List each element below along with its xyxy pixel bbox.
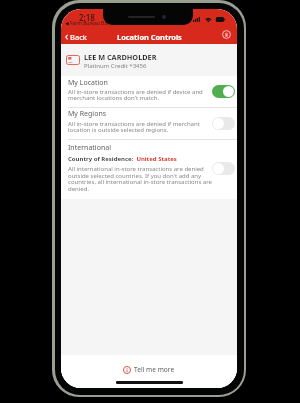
staticText: Back: [70, 32, 87, 42]
button[interactable]: [61, 44, 237, 76]
button[interactable]: ‹: [62, 28, 95, 43]
staticText: My Regions: [68, 109, 107, 119]
staticText: ‹: [65, 29, 69, 43]
staticText: Tell me more: [134, 365, 175, 374]
button[interactable]: Country of Residence: United States: [68, 155, 177, 163]
staticText: Location Controls: [117, 32, 182, 42]
staticText: ◀ Farm Bureau Ba...: [65, 20, 111, 27]
button[interactable]: Switch off: [212, 117, 235, 130]
staticText: LEE M CARDHOLDER: [84, 52, 157, 62]
staticText: merchant locations don't match.: [68, 94, 160, 102]
staticText: location is outside selected regions.: [68, 126, 169, 134]
button[interactable]: Switch off: [212, 162, 235, 175]
button[interactable]: Tell me more: [61, 365, 237, 374]
button[interactable]: [61, 76, 237, 107]
button[interactable]: Switch on: [212, 85, 235, 98]
staticText: My Location: [68, 78, 108, 88]
staticText: countries, all international in-store tr…: [68, 178, 212, 186]
staticText: 2:18: [79, 12, 95, 23]
staticText: All international in-store transactions …: [68, 165, 204, 173]
staticText: All in-store transactions are denied if …: [68, 120, 200, 128]
staticText: Platinum Credit *3456: [84, 62, 147, 70]
staticText: International: [68, 143, 111, 153]
button[interactable]: Lock card: [219, 27, 233, 41]
staticText: denied.: [68, 185, 90, 193]
staticText: All in-store transactions are denied if …: [68, 88, 203, 96]
button[interactable]: [61, 107, 237, 139]
staticText: outside selected countries. If you don't…: [68, 172, 202, 180]
